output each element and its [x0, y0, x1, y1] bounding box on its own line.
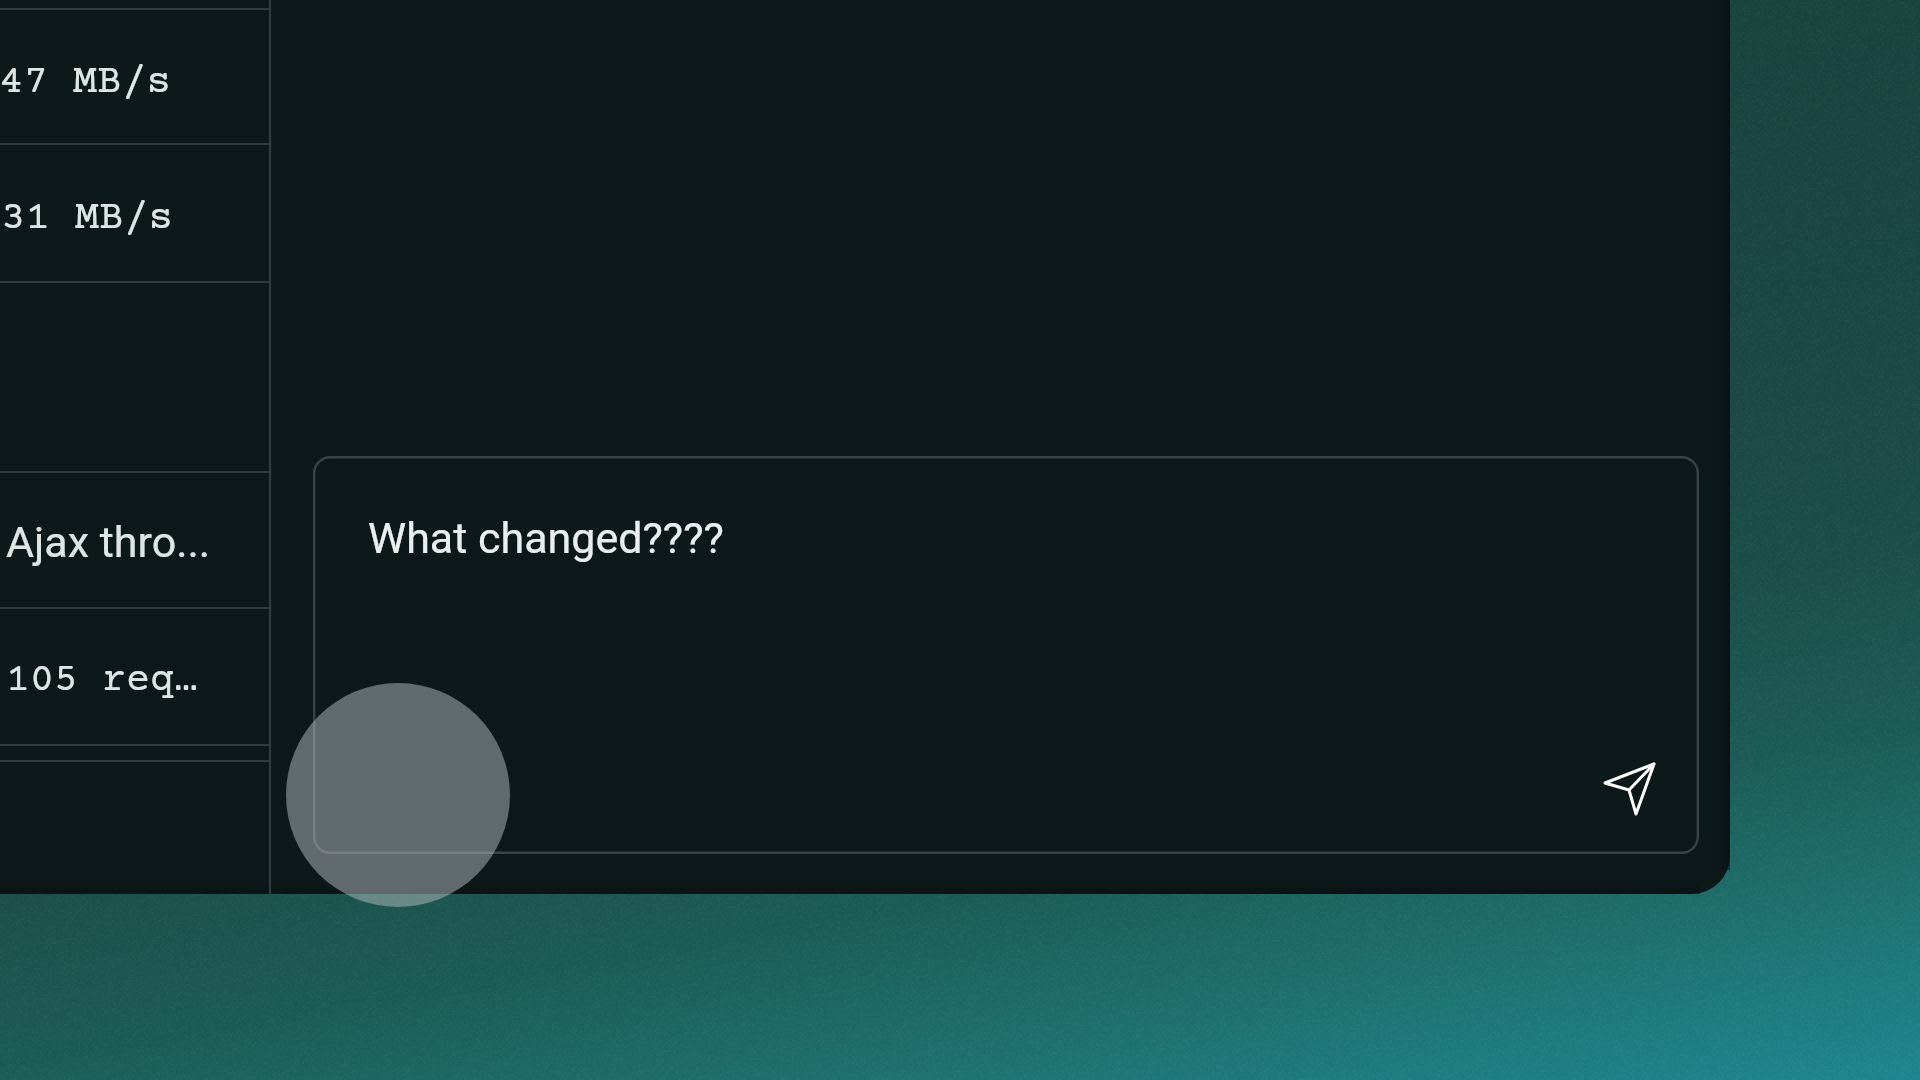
button[interactable]: 105 req… [0, 608, 270, 745]
button[interactable]: Send [1595, 752, 1665, 822]
staticText: Ajax thro... [6, 517, 211, 567]
staticText: What changed???? [368, 513, 724, 563]
button[interactable]: What changed???? [313, 456, 1699, 854]
button[interactable]: 47 MB/s [0, 9, 270, 144]
button[interactable]: 31 MB/s [0, 144, 270, 282]
button[interactable] [0, 282, 270, 472]
staticText: 47 MB/s [0, 60, 172, 106]
button[interactable]: Ajax thro... [0, 472, 270, 608]
button[interactable] [0, 761, 270, 894]
staticText: 31 MB/s [1, 196, 174, 242]
staticText: 105 req… [6, 659, 198, 704]
